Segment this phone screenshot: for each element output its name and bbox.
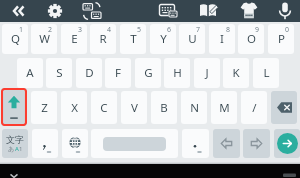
button[interactable]: [182, 129, 209, 158]
staticText: K: [232, 65, 240, 81]
button[interactable]: [213, 129, 240, 158]
staticText: 5: [137, 25, 142, 35]
staticText: X: [71, 100, 78, 116]
staticText: 9: [255, 25, 260, 35]
staticText: N: [190, 100, 199, 116]
button[interactable]: E: [61, 24, 87, 54]
button[interactable]: [6, 0, 30, 22]
staticText: P: [278, 31, 285, 47]
staticText: Y: [160, 31, 167, 47]
button[interactable]: S: [46, 58, 72, 88]
button[interactable]: L: [253, 58, 279, 88]
button[interactable]: X: [61, 91, 87, 124]
staticText: J: [205, 65, 209, 81]
button[interactable]: M: [211, 91, 237, 124]
staticText: あ: [8, 145, 15, 153]
button[interactable]: [1, 88, 27, 126]
button[interactable]: N: [181, 91, 207, 124]
button[interactable]: P: [268, 24, 294, 54]
staticText: W: [39, 31, 50, 47]
staticText: 2: [48, 25, 53, 35]
staticText: E: [71, 31, 78, 47]
staticText: S: [56, 65, 63, 81]
staticText: H: [173, 65, 182, 81]
button[interactable]: Y: [150, 24, 176, 54]
button[interactable]: G: [135, 58, 161, 88]
button[interactable]: C: [91, 91, 117, 124]
staticText: A: [26, 65, 34, 81]
staticText: R: [99, 31, 107, 47]
staticText: V: [131, 100, 138, 116]
button[interactable]: 文字: [2, 129, 28, 158]
button[interactable]: O: [238, 24, 264, 54]
staticText: 0: [285, 25, 290, 35]
staticText: I: [220, 31, 224, 47]
button[interactable]: U: [179, 24, 205, 54]
staticText: 1: [19, 145, 23, 153]
button[interactable]: [62, 129, 88, 158]
button[interactable]: V: [121, 91, 147, 124]
button[interactable]: [44, 0, 66, 22]
staticText: B: [160, 100, 168, 116]
staticText: A: [15, 145, 19, 153]
staticText: M: [219, 100, 230, 116]
button[interactable]: [91, 129, 178, 158]
button[interactable]: K: [223, 58, 249, 88]
button[interactable]: R: [90, 24, 116, 54]
staticText: 3: [78, 25, 83, 35]
button[interactable]: [32, 129, 58, 158]
staticText: /: [252, 100, 257, 116]
staticText: 8: [226, 25, 231, 35]
staticText: F: [115, 65, 121, 81]
staticText: 文字: [6, 134, 24, 145]
staticText: 7: [196, 25, 201, 35]
staticText: L: [263, 65, 270, 81]
button[interactable]: [274, 129, 300, 158]
button[interactable]: I: [209, 24, 235, 54]
button[interactable]: Z: [31, 91, 57, 124]
button[interactable]: H: [164, 58, 190, 88]
button[interactable]: [271, 91, 297, 124]
staticText: Q: [11, 31, 20, 47]
staticText: 6: [167, 25, 172, 35]
button[interactable]: [156, 0, 180, 22]
button[interactable]: [196, 0, 220, 22]
button[interactable]: T: [120, 24, 146, 54]
staticText: G: [144, 65, 153, 81]
staticText: O: [247, 31, 256, 47]
button[interactable]: [237, 0, 261, 22]
button[interactable]: [274, 0, 296, 22]
staticText: C: [100, 100, 108, 116]
button[interactable]: D: [76, 58, 102, 88]
staticText: 4: [107, 25, 112, 35]
button[interactable]: B: [151, 91, 177, 124]
staticText: T: [130, 31, 137, 47]
button[interactable]: [80, 0, 104, 22]
button[interactable]: A: [17, 58, 43, 88]
staticText: 1: [19, 25, 24, 35]
button[interactable]: W: [31, 24, 57, 54]
button[interactable]: /: [241, 91, 267, 124]
button[interactable]: Q: [2, 24, 28, 54]
button[interactable]: [243, 129, 270, 158]
button[interactable]: J: [194, 58, 220, 88]
staticText: U: [188, 31, 197, 47]
staticText: D: [85, 65, 94, 81]
staticText: Z: [41, 100, 48, 116]
button[interactable]: F: [105, 58, 131, 88]
